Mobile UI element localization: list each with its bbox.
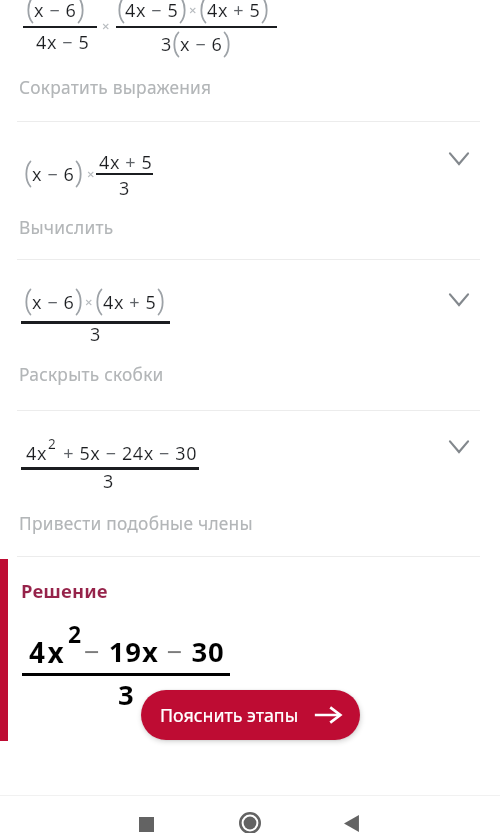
staticText: Пояснить этапы	[160, 703, 299, 727]
button[interactable]	[0, 411, 500, 556]
staticText: 4x + 5	[99, 150, 153, 175]
button[interactable]: Back	[344, 815, 361, 832]
staticText: ×	[87, 165, 95, 183]
staticText: 4x − 5	[125, 0, 179, 23]
button[interactable]: Пояснить этапы	[141, 690, 360, 740]
staticText: 3	[118, 676, 134, 713]
staticText: 2	[68, 618, 82, 649]
staticText: 3	[161, 32, 172, 57]
staticText: 2	[48, 435, 56, 453]
staticText: − 19x − 30	[84, 633, 225, 670]
staticText: x − 6	[32, 290, 75, 315]
staticText: 3	[119, 176, 130, 201]
staticText: Сократить выражения	[19, 76, 212, 100]
staticText: 4x	[29, 633, 67, 671]
staticText: ×	[189, 1, 197, 19]
staticText: 4x + 5	[207, 0, 261, 23]
staticText: 4x + 5	[103, 290, 157, 315]
staticText: 3	[90, 322, 101, 347]
staticText: + 5x − 24x − 30	[58, 441, 198, 466]
staticText: x − 6	[180, 32, 223, 57]
staticText: x − 6	[32, 162, 75, 187]
button[interactable]	[0, 260, 500, 410]
staticText: 4x − 5	[36, 30, 90, 55]
staticText: Привести подобные члены	[19, 512, 253, 536]
staticText: Решение	[21, 578, 108, 603]
staticText: x − 6	[34, 0, 77, 23]
button[interactable]: Home	[239, 812, 261, 833]
staticText: Раскрыть скобки	[19, 363, 164, 387]
staticText: ×	[85, 293, 93, 311]
button[interactable]	[0, 122, 500, 259]
staticText: ×	[102, 17, 110, 35]
staticText: 3	[103, 469, 114, 494]
staticText: 4x	[26, 441, 48, 466]
staticText: Вычислить	[19, 216, 114, 240]
